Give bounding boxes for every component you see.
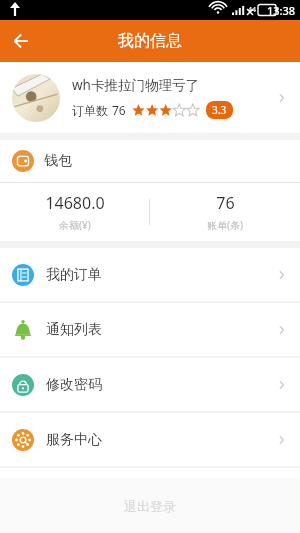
button[interactable]: 通知列表 <box>0 303 300 356</box>
staticText: 我的信息 <box>118 31 182 51</box>
staticText: 服务中心 <box>46 431 102 449</box>
staticText: 账单(条) <box>207 218 243 232</box>
staticText: 14680.0 <box>45 192 105 214</box>
staticText: 3.3 <box>212 103 227 117</box>
staticText: 76 <box>112 102 126 118</box>
button[interactable]: 服务中心 <box>0 413 300 466</box>
staticText: 76 <box>216 192 235 214</box>
staticText: 钱包 <box>44 152 72 170</box>
staticText: wh卡推拉门物理亏了 <box>72 76 199 94</box>
staticText: 44 <box>248 5 257 15</box>
button[interactable]: wh卡推拉门物理亏了 <box>0 62 300 133</box>
button[interactable]: 退出登录 <box>0 478 300 533</box>
staticText: 我的订单 <box>46 266 102 284</box>
staticText: 订单数 <box>72 103 108 118</box>
button[interactable]: 76 <box>150 192 300 232</box>
button[interactable]: 14680.0 <box>0 192 149 232</box>
button[interactable]: Back <box>0 20 42 62</box>
staticText: 余额(¥) <box>59 218 91 232</box>
staticText: 退出登录 <box>124 498 176 514</box>
staticText: 修改密码 <box>46 376 102 394</box>
button[interactable]: 钱包 <box>0 140 300 182</box>
staticText: 13:38 <box>267 3 296 18</box>
button[interactable]: 修改密码 <box>0 358 300 411</box>
button[interactable]: 我的订单 <box>0 248 300 301</box>
staticText: 通知列表 <box>46 321 102 339</box>
